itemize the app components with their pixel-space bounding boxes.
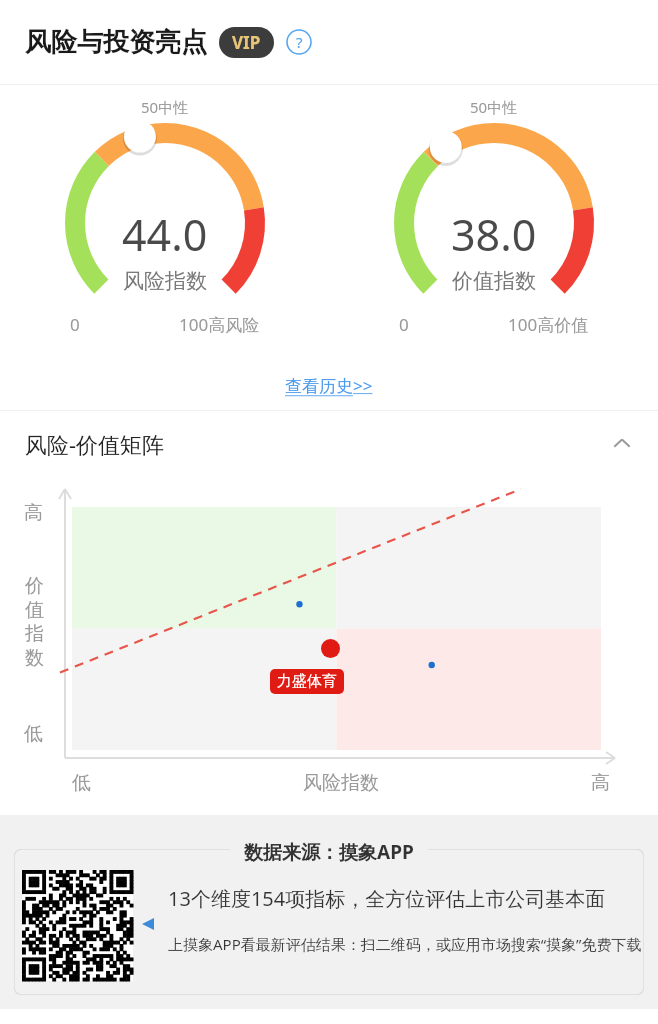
staticText: 13个维度154项指标，全方位评估上市公司基本面: [168, 885, 606, 912]
staticText: 风险指数: [123, 268, 207, 294]
button[interactable]: 风险-价值矩阵: [0, 411, 658, 477]
staticText: 100高价值: [508, 313, 589, 336]
staticText: 44.0: [122, 205, 208, 264]
staticText: 数: [25, 646, 44, 670]
staticText: 查看历史>>: [285, 374, 373, 397]
staticText: 50中性: [470, 97, 518, 117]
staticText: 低: [24, 722, 43, 746]
staticText: 力盛体育: [277, 672, 337, 691]
button[interactable]: VIP: [219, 27, 274, 58]
staticText: 38.0: [451, 205, 537, 264]
staticText: 高: [591, 771, 610, 795]
staticText: 低: [72, 771, 91, 795]
staticText: 风险指数: [303, 771, 379, 795]
button[interactable]: 力盛体育: [270, 669, 344, 694]
staticText: 高: [24, 501, 43, 525]
staticText: 50中性: [141, 97, 189, 117]
staticText: 风险与投资亮点: [25, 26, 207, 59]
staticText: 0: [399, 313, 409, 336]
button[interactable]: Help: [286, 29, 312, 55]
staticText: 值: [25, 598, 44, 622]
button[interactable]: 查看历史>>: [277, 366, 381, 405]
staticText: 风险-价值矩阵: [25, 429, 165, 459]
staticText: 数据来源：摸象APP: [244, 839, 414, 865]
staticText: 0: [70, 313, 80, 336]
staticText: ?: [296, 32, 303, 52]
staticText: 100高风险: [179, 313, 260, 336]
staticText: 价: [25, 574, 44, 598]
staticText: 价值指数: [452, 268, 536, 294]
staticText: 指: [25, 622, 44, 646]
staticText: 上摸象APP看最新评估结果：扫二维码，或应用市场搜索“摸象”免费下载: [168, 934, 642, 954]
staticText: VIP: [232, 31, 261, 54]
